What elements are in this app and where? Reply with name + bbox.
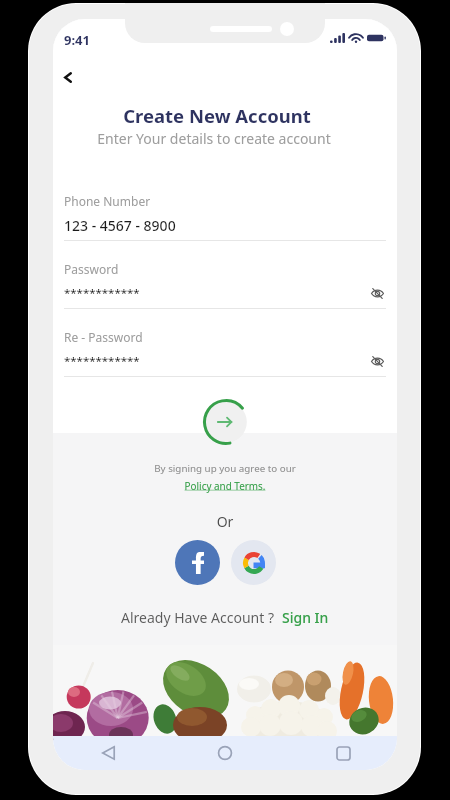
button[interactable]: Back <box>53 59 86 95</box>
button[interactable]: Toggle password visibility <box>368 284 386 302</box>
button[interactable]: Sign up with Google <box>231 540 276 585</box>
staticText: By signing up you agree to our <box>53 462 397 475</box>
staticText: 123 - 4567 - 8900 <box>64 216 176 235</box>
staticText: Or <box>53 512 397 531</box>
button[interactable]: Recent apps <box>329 736 357 770</box>
staticText: Password <box>64 261 119 277</box>
staticText: 9:41 <box>64 31 90 49</box>
staticText: Already Have Account ? <box>121 608 282 627</box>
button[interactable]: Toggle password visibility <box>368 352 386 370</box>
button[interactable]: Sign up with Facebook <box>175 540 220 585</box>
staticText: Re - Password <box>64 329 143 345</box>
staticText: Phone Number <box>64 193 151 209</box>
staticText: ************ <box>64 285 140 301</box>
staticText: ************ <box>64 353 140 369</box>
button[interactable]: Continue <box>196 392 256 452</box>
button[interactable]: Back <box>94 736 122 770</box>
button[interactable]: Sign In <box>282 608 329 627</box>
button[interactable]: Policy and Terms. <box>53 479 397 492</box>
staticText: Enter Your details to create account <box>53 129 386 148</box>
staticText: Create New Account <box>53 103 389 128</box>
button[interactable]: Home <box>211 736 239 770</box>
